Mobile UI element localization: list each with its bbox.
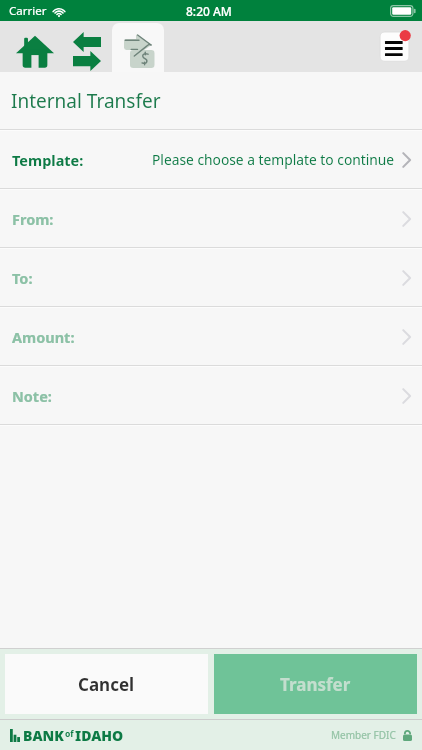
staticText: Member FDIC	[331, 728, 396, 742]
staticText: of	[65, 728, 74, 740]
staticText: IDAHO	[75, 726, 124, 745]
button[interactable]: Amount:	[0, 308, 422, 365]
staticText: Carrier	[9, 3, 47, 19]
staticText: Amount:	[12, 327, 75, 347]
staticText: Transfer	[280, 673, 351, 696]
button[interactable]: Cancel	[5, 654, 208, 714]
staticText: To:	[12, 268, 33, 288]
staticText: Template:	[12, 150, 84, 170]
button[interactable]: From:	[0, 190, 422, 247]
staticText: Note:	[12, 386, 52, 406]
staticText: Internal Transfer	[11, 88, 161, 114]
staticText: From:	[12, 209, 54, 229]
button[interactable]: Transfers	[61, 21, 113, 72]
button[interactable]: Menu	[378, 30, 412, 64]
staticText: 8:20 AM	[186, 3, 232, 19]
button[interactable]: Internal Transfer	[113, 21, 165, 72]
button[interactable]: Transfer	[214, 654, 417, 714]
button[interactable]: Note:	[0, 367, 422, 424]
staticText: Cancel	[78, 673, 135, 696]
button[interactable]: Template:	[0, 131, 422, 188]
button[interactable]: To:	[0, 249, 422, 306]
staticText: BANK	[23, 726, 64, 745]
staticText: Please choose a template to continue	[152, 150, 395, 169]
button[interactable]: Home	[9, 21, 61, 72]
